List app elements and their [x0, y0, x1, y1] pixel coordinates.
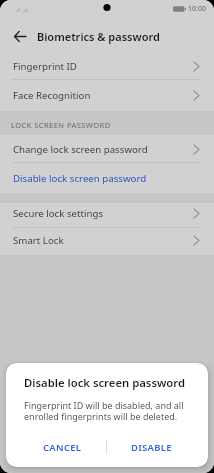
staticText: Biometrics & password [37, 29, 160, 44]
button[interactable]: Face Recognition [0, 80, 214, 111]
staticText: Change lock screen password [13, 143, 148, 156]
button[interactable]: DISABLE [107, 432, 196, 462]
button[interactable]: Change lock screen password [0, 135, 214, 163]
staticText: DISABLE [131, 441, 172, 454]
staticText: 10:00 [188, 4, 206, 14]
button[interactable] [14, 31, 26, 42]
staticText: Fingerprint ID [13, 60, 77, 73]
staticText: Smart Lock [13, 234, 64, 247]
button[interactable]: CANCEL [18, 432, 106, 462]
staticText: CANCEL [43, 441, 82, 454]
staticText: Disable lock screen password [13, 172, 147, 185]
button[interactable]: Disable lock screen password [0, 163, 214, 193]
staticText: LOCK SCREEN PASSWORD [11, 120, 111, 130]
staticText: Fingerprint ID will be disabled, and all… [24, 399, 184, 423]
button[interactable]: Fingerprint ID [0, 52, 214, 80]
staticText: Secure lock settings [13, 207, 104, 220]
staticText: Face Recognition [13, 89, 91, 102]
button[interactable]: Smart Lock [0, 228, 214, 255]
staticText: Disable lock screen password [24, 375, 186, 390]
button[interactable]: Secure lock settings [0, 203, 214, 228]
